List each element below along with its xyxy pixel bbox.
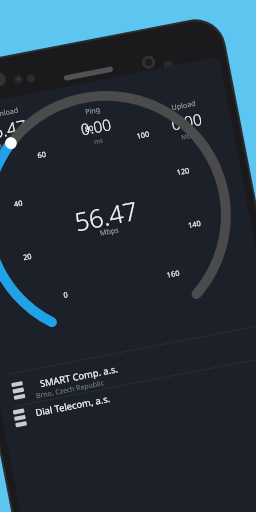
button[interactable]: Speed test result 56.47 Mbps download <box>0 0 256 512</box>
